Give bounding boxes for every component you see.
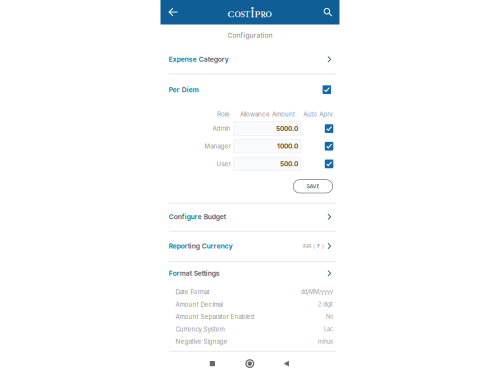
button[interactable]: Auto approve for Admin: [325, 124, 333, 133]
staticText: SAVE: [306, 183, 319, 190]
staticText: Reporting Currency: [169, 242, 233, 250]
staticText: Lac: [324, 326, 333, 333]
staticText: RO: [260, 11, 271, 19]
button[interactable]: Format Settings: [160, 261, 339, 285]
staticText: INR ( ₹ ): [303, 243, 324, 249]
staticText: 1000.0: [277, 142, 298, 150]
button[interactable]: Expense Category: [160, 46, 339, 73]
staticText: Allowance Amount: [240, 110, 295, 118]
staticText: Configuration: [227, 31, 272, 39]
staticText: P: [254, 10, 260, 19]
staticText: Format Settings: [169, 269, 220, 277]
button[interactable]: Home: [237, 354, 263, 374]
staticText: Auto Aprv.: [303, 110, 334, 118]
staticText: User: [217, 160, 231, 168]
button[interactable]: Auto approve for User: [325, 160, 333, 168]
button[interactable]: Search: [319, 3, 337, 21]
staticText: I: [250, 9, 254, 20]
button[interactable]: Per Diem: [160, 76, 339, 103]
button[interactable]: Recent apps: [199, 354, 225, 374]
staticText: No: [326, 313, 333, 320]
staticText: Role: [217, 110, 230, 118]
staticText: Currency System: [175, 325, 224, 333]
staticText: Amount Separator Enabled: [175, 313, 254, 320]
staticText: Per Diem: [169, 86, 199, 94]
staticText: dd/MM/yyyy: [301, 289, 333, 295]
staticText: Admin: [213, 125, 231, 132]
staticText: minus: [318, 338, 333, 345]
staticText: 2 digit: [318, 301, 333, 308]
staticText: Manager: [205, 142, 231, 150]
staticText: OST: [234, 11, 250, 19]
staticText: Amount Decimal: [175, 301, 222, 308]
button[interactable]: SAVE: [293, 180, 333, 193]
staticText: 500.0: [280, 160, 298, 168]
staticText: Date Format: [175, 288, 209, 296]
staticText: 5000.0: [276, 125, 298, 132]
button[interactable]: Configure Budget: [160, 203, 339, 231]
staticText: Expense Category: [169, 55, 229, 63]
button[interactable]: Auto approve for Manager: [325, 142, 333, 150]
staticText: C: [227, 10, 234, 19]
button[interactable]: Reporting Currency: [160, 231, 339, 261]
button[interactable]: Back: [273, 354, 299, 374]
staticText: Negative Signage: [175, 338, 227, 345]
staticText: Configure Budget: [169, 213, 226, 221]
button[interactable]: Back: [164, 3, 182, 21]
